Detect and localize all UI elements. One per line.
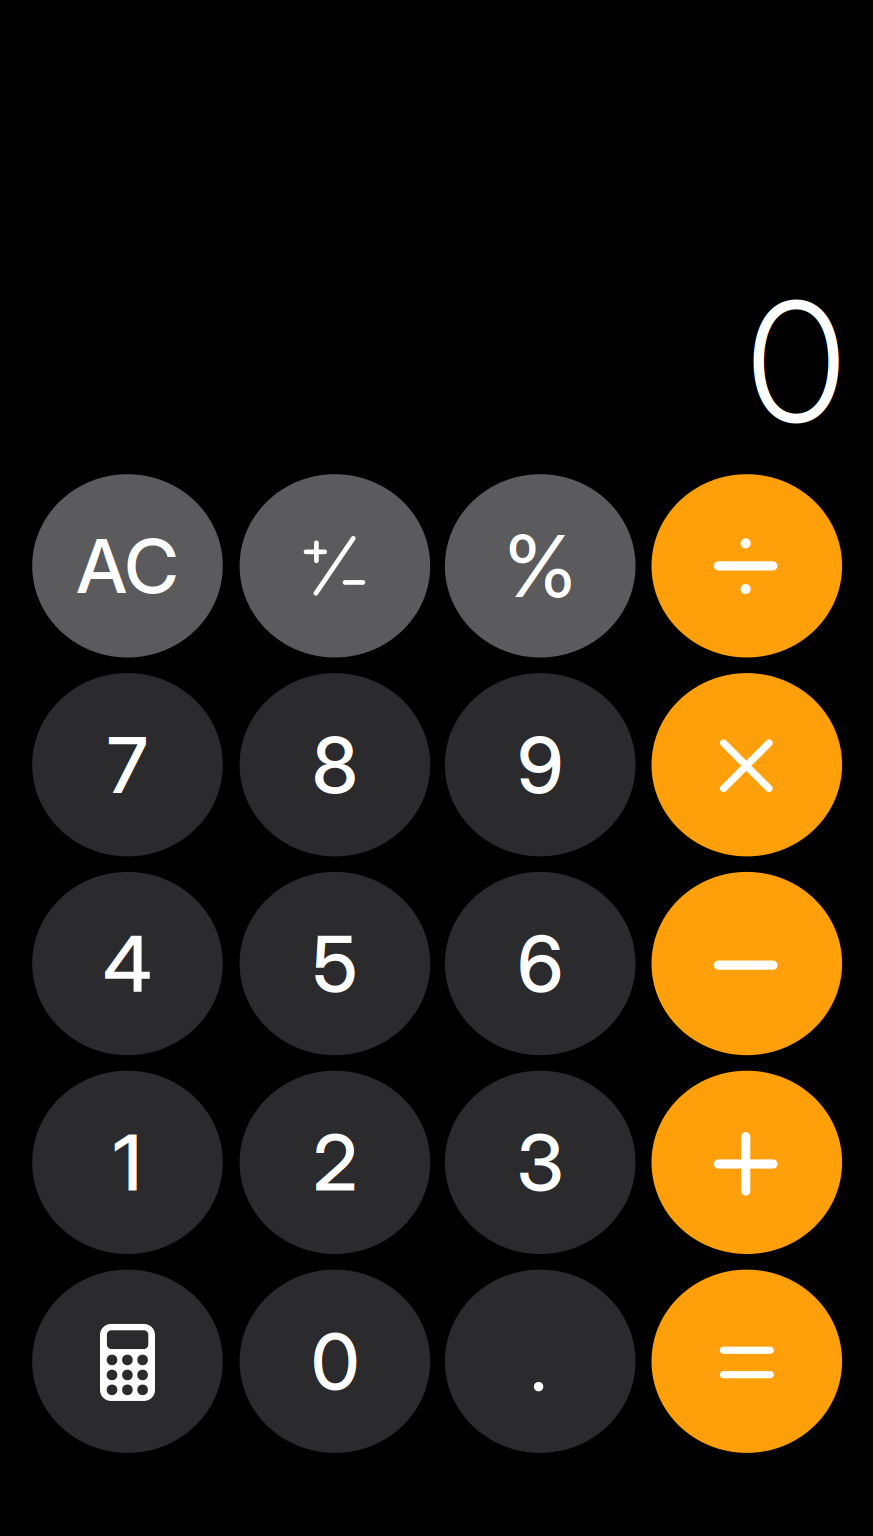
staticText: 8 — [312, 718, 358, 812]
button[interactable]: 9 — [445, 673, 635, 856]
staticText: 3 — [517, 1116, 564, 1209]
button[interactable]: 8 — [240, 673, 430, 856]
staticText: 9 — [517, 718, 563, 812]
button[interactable]: Minus — [651, 872, 842, 1055]
button[interactable]: Decimal point — [445, 1270, 635, 1453]
button[interactable]: 5 — [240, 872, 430, 1055]
staticText: 2 — [313, 1116, 357, 1209]
staticText: AC — [76, 521, 178, 611]
button[interactable]: Plus minus — [240, 474, 430, 657]
staticText: % — [504, 514, 576, 617]
button[interactable]: Percent — [445, 474, 635, 657]
button[interactable]: Calculator — [32, 1270, 223, 1453]
staticText: 7 — [107, 718, 148, 812]
button[interactable]: Multiply — [651, 673, 842, 856]
button[interactable]: 1 — [32, 1071, 223, 1254]
staticText: 6 — [517, 917, 563, 1010]
button[interactable]: 7 — [32, 673, 223, 856]
staticText: 0 — [747, 261, 845, 461]
button[interactable]: 0 — [240, 1270, 430, 1453]
button[interactable]: Equals — [651, 1270, 842, 1453]
button[interactable]: All clear — [32, 474, 223, 657]
button[interactable]: Divide — [651, 474, 842, 657]
button[interactable]: 2 — [240, 1071, 430, 1254]
button[interactable]: Plus — [651, 1071, 842, 1254]
staticText: 0 — [311, 1314, 359, 1408]
staticText: 4 — [103, 917, 152, 1010]
staticText: 5 — [312, 917, 357, 1010]
button[interactable]: 4 — [32, 872, 223, 1055]
button[interactable]: 6 — [445, 872, 635, 1055]
button[interactable]: 3 — [445, 1071, 635, 1254]
staticText: 1 — [113, 1116, 142, 1209]
